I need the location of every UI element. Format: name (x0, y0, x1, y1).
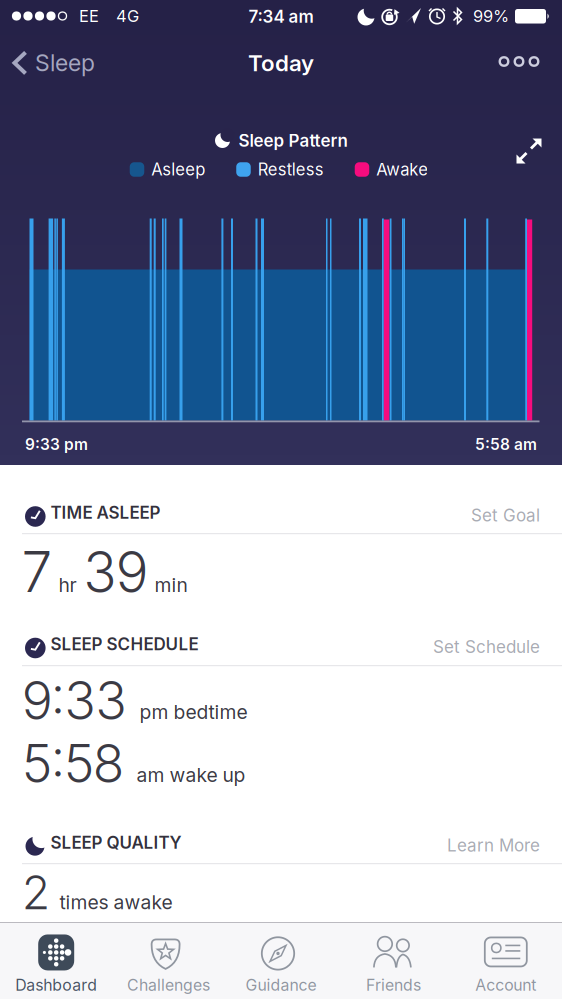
staticText: min (154, 573, 187, 597)
staticText: Guidance (245, 975, 316, 994)
staticText: SLEEP SCHEDULE (50, 634, 198, 654)
button[interactable]: Set Goal (471, 505, 540, 526)
button[interactable]: More (500, 57, 538, 66)
staticText: 7 (22, 539, 51, 605)
button[interactable]: Challenges (114, 934, 224, 994)
staticText: 9:33 pm (25, 435, 88, 454)
staticText: TIME ASLEEP (50, 502, 160, 523)
staticText: Sleep Pattern (238, 130, 347, 151)
staticText: 7:34 am (248, 6, 313, 27)
button[interactable]: Expand (515, 137, 542, 164)
staticText: 9:33 (22, 669, 126, 732)
staticText: am wake up (136, 763, 245, 787)
staticText: 39 (83, 539, 147, 605)
button[interactable]: Friends (338, 934, 448, 994)
staticText: 2 (22, 864, 49, 921)
staticText: 4G (116, 6, 139, 26)
staticText: EE (79, 6, 99, 26)
staticText: Restless (258, 159, 324, 180)
staticText: hr (58, 573, 76, 597)
staticText: Set Goal (471, 505, 540, 526)
staticText: Learn More (447, 835, 540, 856)
staticText: SLEEP QUALITY (50, 832, 181, 853)
staticText: times awake (59, 891, 172, 914)
button[interactable]: Learn More (447, 835, 540, 856)
staticText: Asleep (151, 159, 205, 180)
staticText: 5:58 (22, 732, 123, 795)
staticText: 99% (473, 6, 509, 26)
staticText: Account (475, 975, 536, 994)
button[interactable]: Back (12, 49, 95, 77)
staticText: Sleep (35, 49, 95, 77)
button[interactable]: Dashboard (1, 934, 111, 994)
staticText: pm bedtime (139, 700, 247, 724)
staticText: Awake (376, 159, 428, 180)
staticText: Today (248, 49, 314, 77)
staticText: Challenges (127, 975, 210, 994)
button[interactable]: Account (451, 934, 561, 994)
staticText: Set Schedule (433, 636, 540, 657)
button[interactable]: Guidance (226, 934, 336, 994)
staticText: Friends (366, 975, 421, 994)
staticText: 5:58 am (475, 435, 537, 454)
button[interactable]: Set Schedule (433, 636, 540, 657)
staticText: Dashboard (15, 975, 97, 994)
